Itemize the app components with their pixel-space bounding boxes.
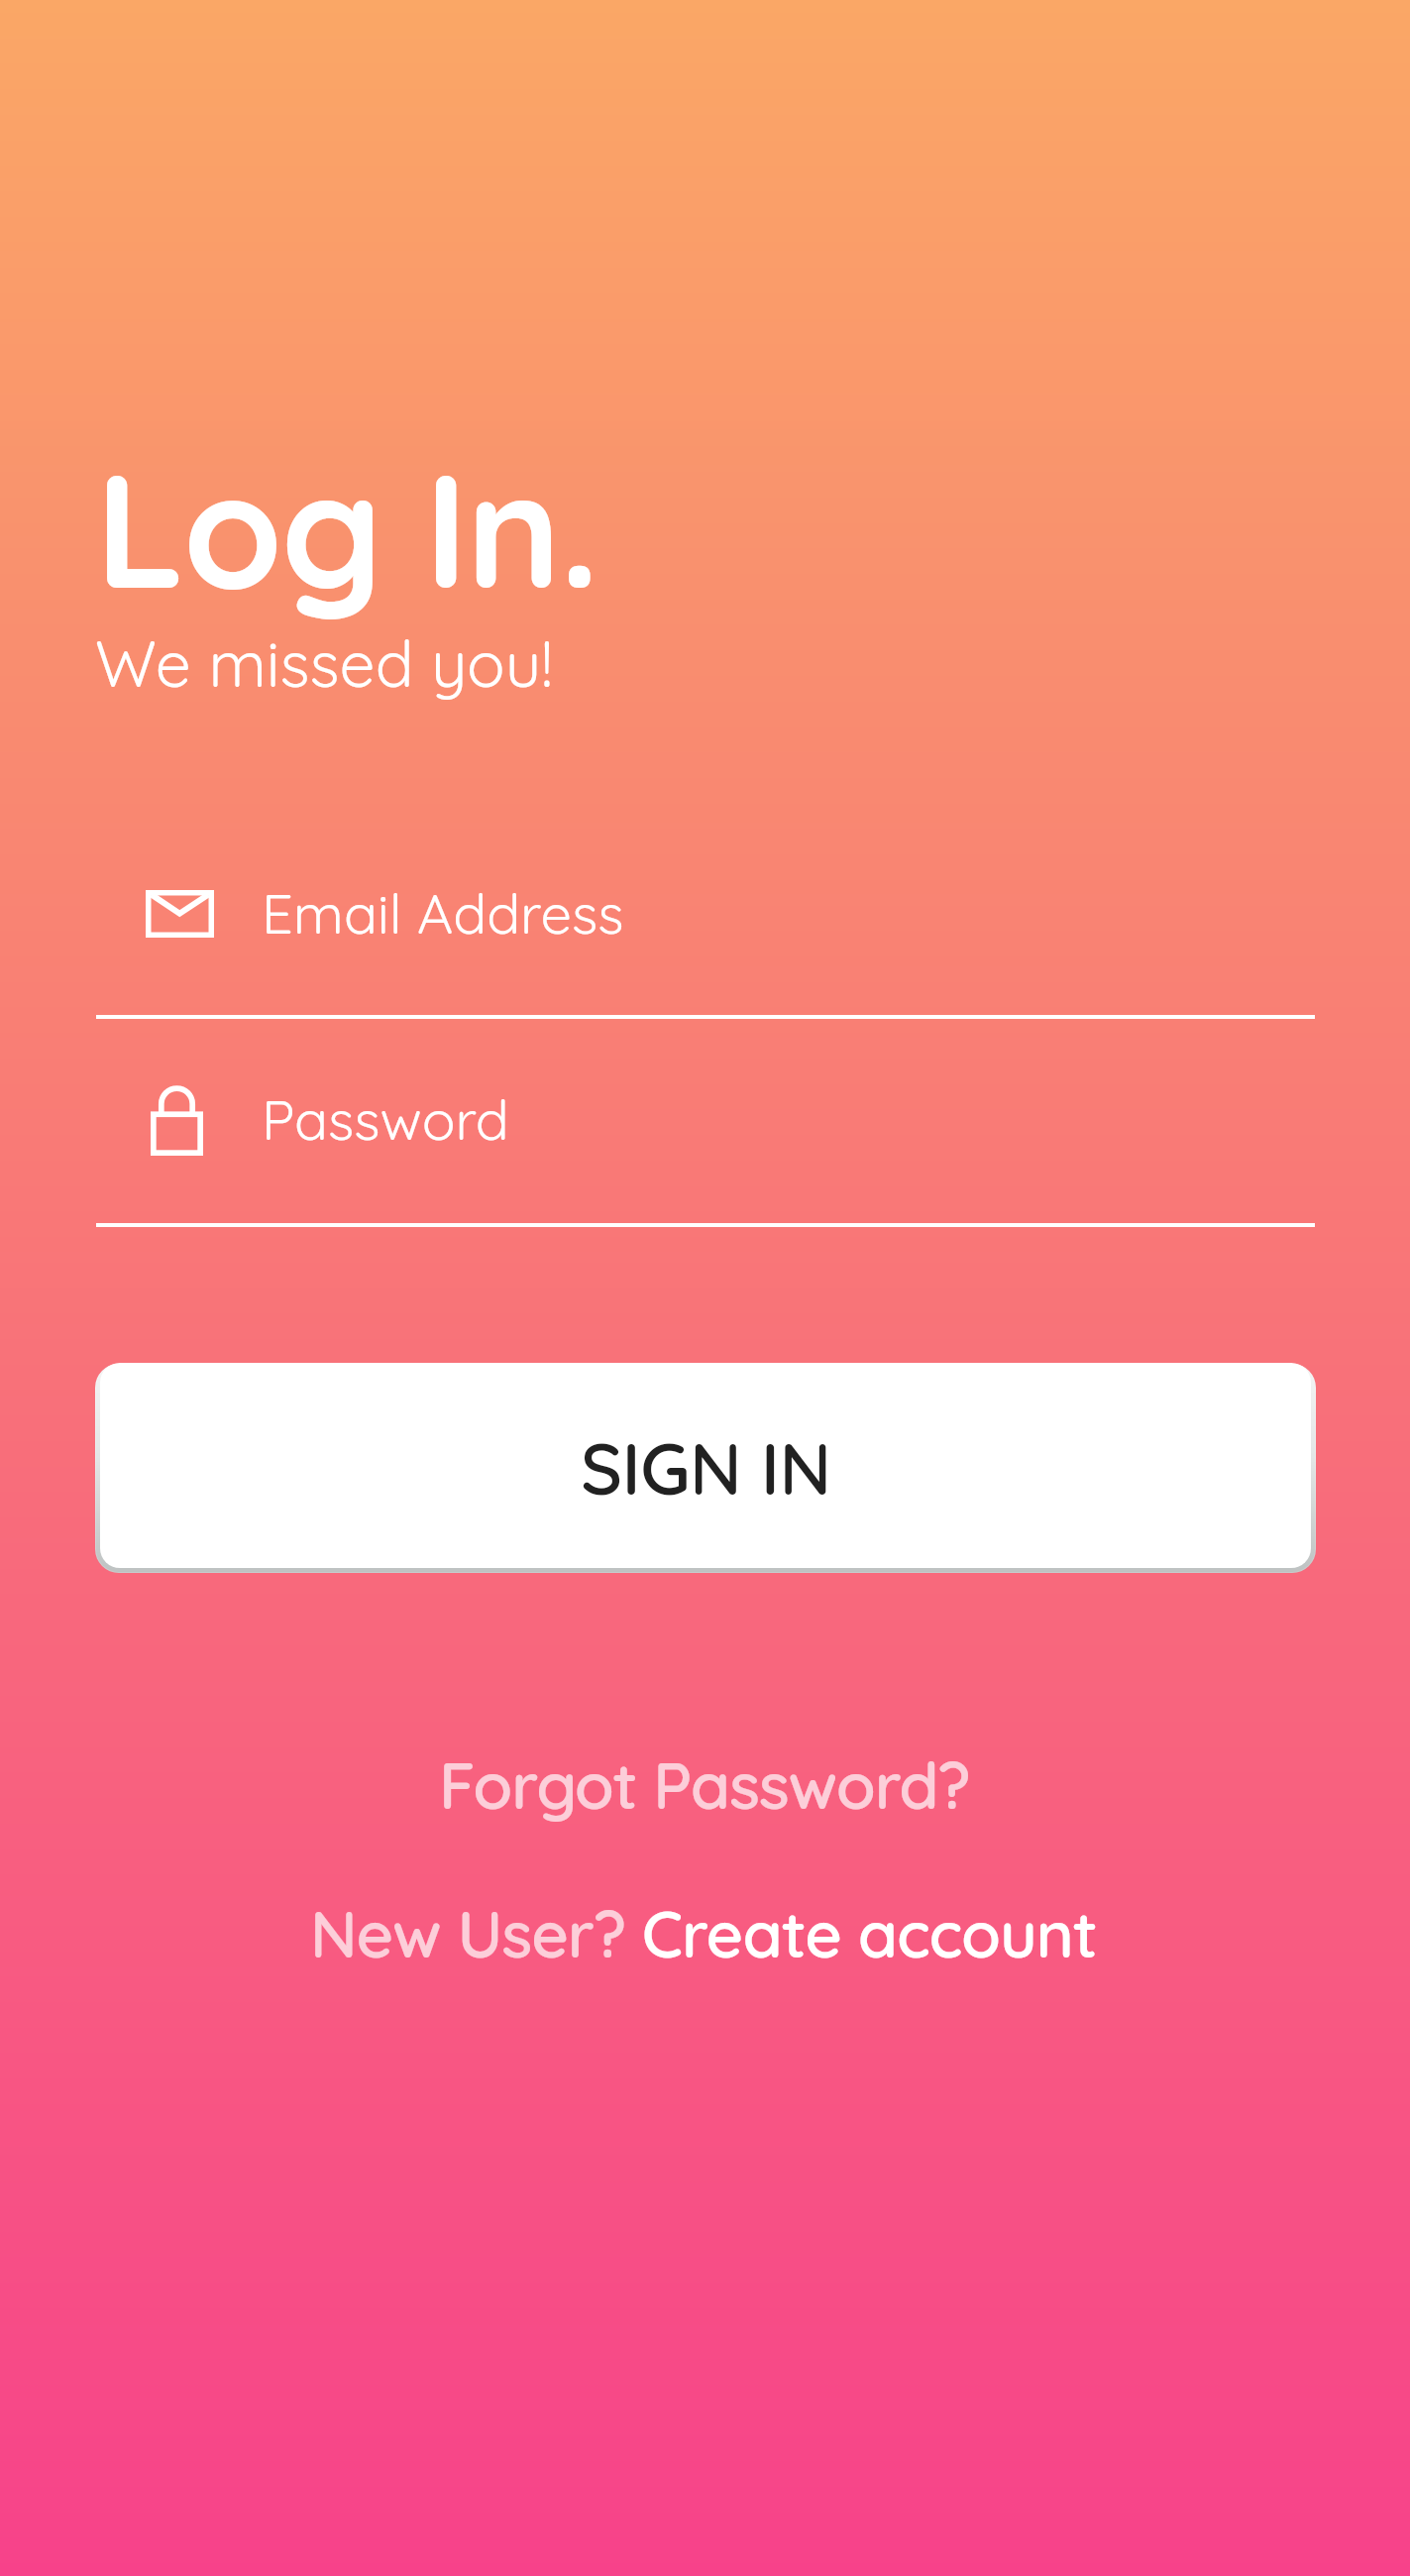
button[interactable]: New User? Create account [310,1893,1103,1972]
staticText: We missed you! [95,623,553,703]
other: Email [146,890,214,938]
staticText: Email Address [262,878,624,948]
staticText: New User? Create account [310,1893,1097,1972]
button[interactable]: Forgot Password? [439,1744,975,1826]
other: Password [151,1085,203,1156]
staticText: Password [262,1084,509,1154]
staticText: Log In. [95,428,598,627]
button[interactable]: SIGN IN [95,1362,1316,1573]
staticText: SIGN IN [581,1423,831,1512]
staticText: Forgot Password? [439,1744,970,1825]
button[interactable]: Password [96,1080,1315,1227]
button[interactable]: Email [96,872,1315,1019]
